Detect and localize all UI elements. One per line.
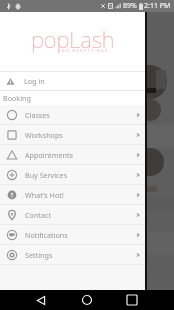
staticText: Classes <box>25 110 50 120</box>
button[interactable]: Back <box>26 290 55 310</box>
button[interactable]: Log in <box>0 72 145 90</box>
staticText: Notifications <box>25 230 68 240</box>
staticText: 2:11 PM <box>144 1 171 11</box>
staticText: What's Hot! <box>25 190 64 200</box>
button[interactable]: Workshops <box>0 125 145 145</box>
staticText: Log in <box>24 76 45 86</box>
staticText: popLash <box>31 24 115 54</box>
button[interactable]: Appointments <box>0 145 145 165</box>
button[interactable]: Recent apps <box>117 290 147 310</box>
staticText: Booking <box>3 93 31 103</box>
staticText: Settings <box>25 250 53 260</box>
button[interactable]: Settings <box>0 245 145 265</box>
button[interactable]: Classes <box>0 105 145 125</box>
button[interactable]: Contact <box>0 205 145 225</box>
staticText: AND BEAUTY BAR <box>58 48 109 53</box>
staticText: Buy Services <box>25 170 68 180</box>
button[interactable]: Buy Services <box>0 165 145 185</box>
staticText: Contact <box>25 210 52 220</box>
staticText: Workshops <box>25 130 63 140</box>
button[interactable]: What's Hot! <box>0 185 145 205</box>
staticText: 89% <box>123 1 137 11</box>
button[interactable]: Notifications <box>0 225 145 245</box>
button[interactable]: Home <box>72 290 102 310</box>
staticText: Appointments <box>25 150 73 160</box>
